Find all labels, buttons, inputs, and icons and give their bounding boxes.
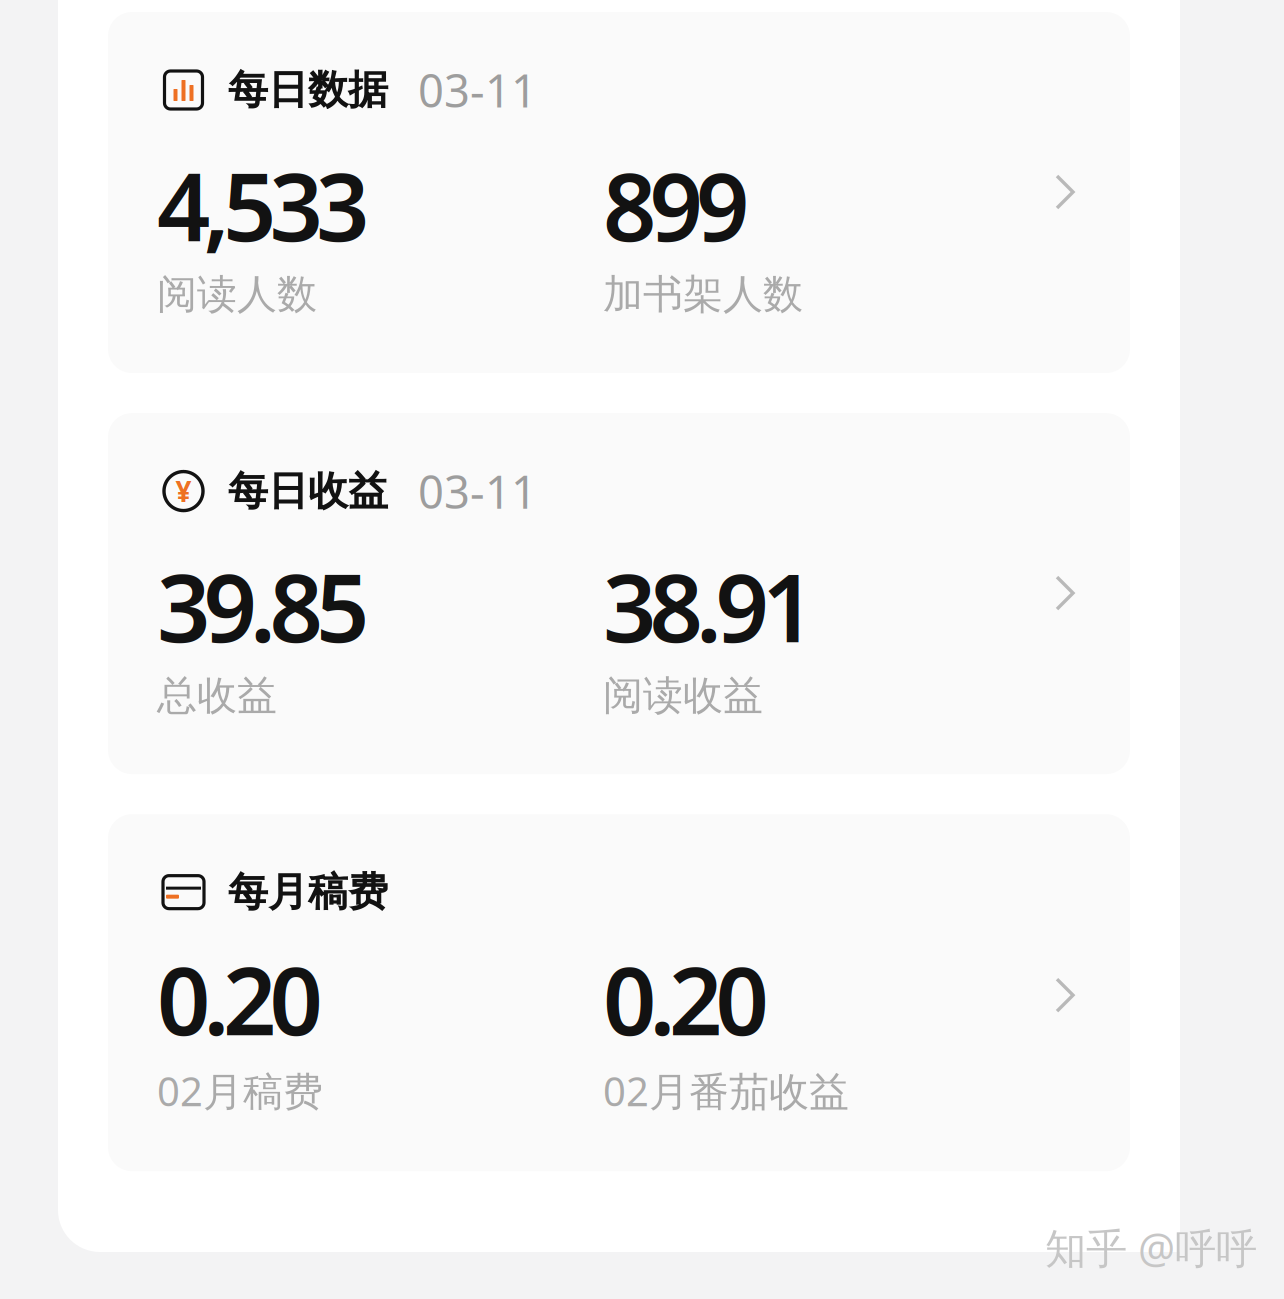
staticText: 02月稿费 — [157, 1064, 323, 1117]
staticText: 4,533 — [157, 143, 369, 267]
button[interactable]: 每日数据 03-11 — [108, 12, 1130, 373]
staticText: 每日数据 — [228, 65, 388, 114]
staticText: 38.91 — [603, 544, 815, 668]
staticText: 0.20 — [157, 937, 322, 1061]
staticText: 0.20 — [603, 937, 768, 1061]
staticText: 阅读收益 — [603, 671, 763, 720]
staticText: 每月稿费 — [228, 868, 388, 917]
staticText: 加书架人数 — [603, 270, 803, 319]
button[interactable]: 每月稿费 — [108, 814, 1130, 1171]
staticText: ¥ — [175, 472, 191, 510]
staticText: 03-11 — [418, 461, 537, 521]
staticText: 899 — [603, 143, 749, 267]
staticText: 知乎 @呼呼 — [1045, 1220, 1257, 1275]
staticText: 每日收益 — [228, 466, 388, 516]
staticText: 39.85 — [157, 544, 369, 668]
staticText: 03-11 — [418, 60, 537, 120]
staticText: 总收益 — [157, 671, 277, 720]
button[interactable]: 每日收益 03-11 — [108, 413, 1130, 774]
staticText: 02月番茄收益 — [603, 1064, 849, 1117]
staticText: 阅读人数 — [157, 270, 317, 319]
